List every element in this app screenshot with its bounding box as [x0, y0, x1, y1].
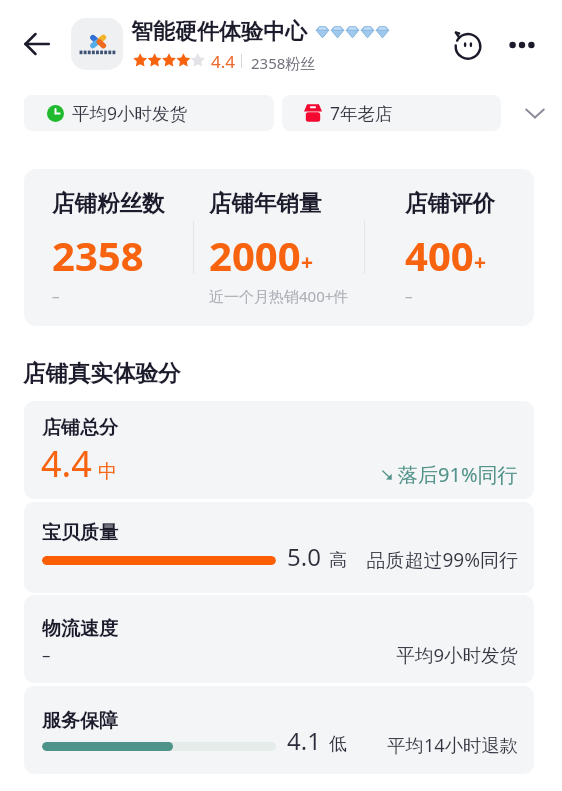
staticText: 4.4 [211, 50, 236, 73]
staticText: 400 [405, 228, 474, 282]
staticText: 店铺粉丝数 [52, 189, 165, 217]
staticText: 物流速度 [42, 617, 118, 641]
staticText: 店铺年销量 [209, 189, 322, 217]
button[interactable]: Back [17, 24, 57, 64]
button[interactable]: Shop logo [71, 18, 123, 70]
staticText: 平均9小时发货 [72, 101, 188, 125]
staticText: 7年老店 [330, 101, 393, 125]
staticText: 2358粉丝 [251, 53, 316, 73]
staticText: + [474, 248, 487, 277]
staticText: 2000 [209, 228, 301, 282]
staticText: 服务保障 [42, 709, 118, 733]
button[interactable]: 店铺评价 [365, 169, 534, 326]
staticText: 平均14小时退款 [24, 732, 518, 757]
button[interactable]: 店铺粉丝数 [24, 169, 193, 326]
staticText: 落后91%同行 [398, 461, 518, 488]
staticText: 2358 [52, 228, 144, 282]
staticText: 宝贝质量 [42, 521, 118, 545]
staticText: 高 [329, 549, 347, 572]
button[interactable]: More options [502, 25, 542, 65]
button[interactable]: 7年老店 [282, 95, 501, 131]
staticText: – [42, 643, 51, 666]
staticText: 品质超过99%同行 [24, 547, 518, 573]
button[interactable]: 物流速度 [24, 595, 534, 683]
staticText: 近一个月热销400+件 [209, 286, 349, 306]
staticText: – [52, 286, 60, 306]
staticText: 智能硬件体验中心 [131, 18, 307, 46]
button[interactable]: 店铺年销量 [194, 169, 364, 326]
staticText: 4.4 [41, 439, 92, 488]
staticText: 平均9小时发货 [24, 642, 518, 667]
button[interactable]: 店铺总分 [24, 401, 534, 499]
button[interactable]: Customer service [448, 25, 488, 65]
button[interactable]: 服务保障 [24, 686, 534, 774]
button[interactable]: Expand [518, 96, 552, 130]
staticText: 店铺真实体验分 [23, 359, 181, 387]
staticText: 4.1 [287, 724, 321, 757]
staticText: – [405, 286, 413, 306]
button[interactable]: 平均9小时发货 [24, 95, 274, 131]
staticText: + [301, 248, 314, 277]
button[interactable]: 宝贝质量 [24, 502, 534, 593]
staticText: 店铺总分 [42, 416, 118, 440]
staticText: 低 [329, 733, 347, 756]
staticText: 店铺评价 [405, 189, 495, 217]
staticText: 中 [98, 460, 117, 484]
staticText: 5.0 [287, 540, 321, 573]
